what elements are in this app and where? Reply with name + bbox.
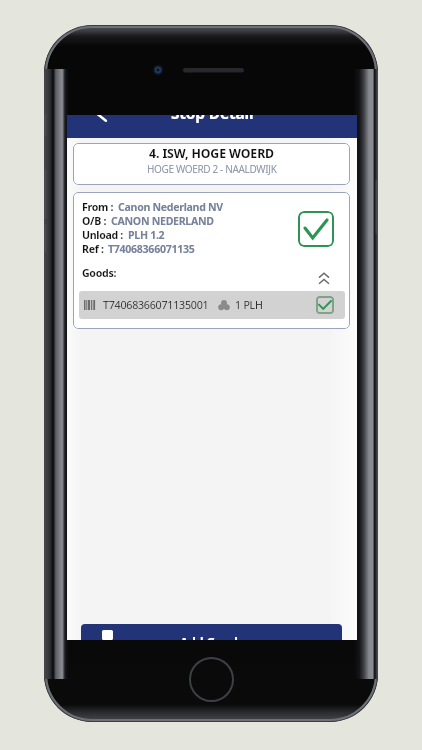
button[interactable]: Add Goods <box>81 624 342 640</box>
button[interactable]: Back <box>92 115 111 124</box>
staticText: Canon Nederland NV <box>118 200 223 214</box>
button[interactable]: Stop completed <box>298 211 334 247</box>
staticText: Goods: <box>82 266 117 280</box>
staticText: O/B : <box>82 214 107 228</box>
staticText: Unload : <box>82 228 124 242</box>
staticText: Ref : <box>82 242 104 256</box>
staticText: Add Goods <box>180 634 244 640</box>
staticText: Stop Detail <box>171 115 254 123</box>
staticText: CANON NEDERLAND <box>111 214 214 228</box>
button[interactable]: Goods: <box>82 266 345 280</box>
staticText: 4. ISW, HOGE WOERD <box>149 145 274 162</box>
button[interactable]: T74068366071135001 <box>79 291 345 319</box>
staticText: HOGE WOERD 2 - NAALDWIJK <box>147 162 277 176</box>
staticText: T74068366071135 <box>108 242 195 256</box>
button[interactable]: Item checked <box>316 296 334 314</box>
staticText: From : <box>82 200 114 214</box>
staticText: 1 PLH <box>235 298 263 313</box>
staticText: T74068366071135001 <box>103 298 209 313</box>
button[interactable]: 4. ISW, HOGE WOERD <box>73 143 350 185</box>
staticText: PLH 1.2 <box>128 228 165 242</box>
